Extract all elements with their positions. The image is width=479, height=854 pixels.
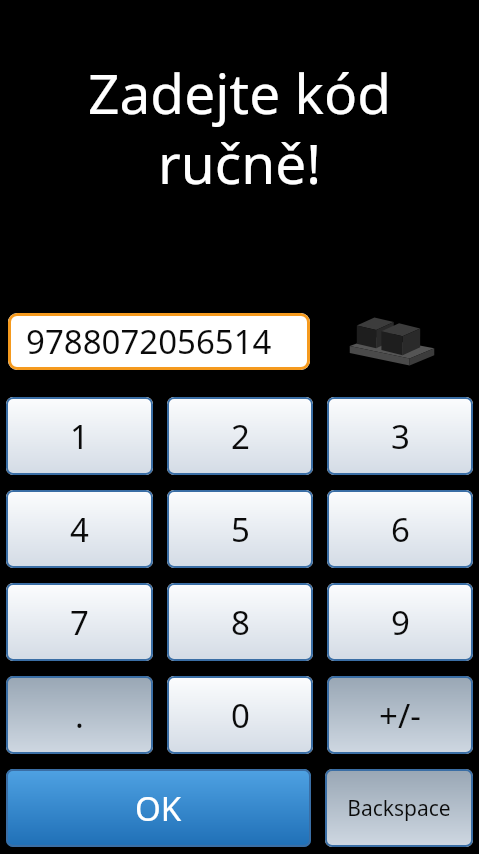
other: Pallet [348, 313, 436, 370]
staticText: 8 [231, 600, 250, 645]
staticText: 7 [70, 600, 89, 645]
staticText: 9 [391, 600, 410, 645]
button[interactable]: 2 [167, 397, 313, 475]
staticText: . [75, 693, 84, 738]
button[interactable]: 9 [327, 583, 473, 661]
staticText: Zadejte kód ručně! [88, 55, 391, 200]
button[interactable]: 6 [327, 490, 473, 568]
button[interactable]: +/- [327, 676, 473, 754]
button[interactable]: 0 [167, 676, 313, 754]
staticText: 5 [231, 507, 250, 552]
staticText: 4 [70, 507, 89, 552]
button[interactable]: 9788072056514 [8, 313, 310, 370]
staticText: 1 [70, 414, 89, 459]
button[interactable]: 1 [6, 397, 153, 475]
staticText: 2 [231, 414, 250, 459]
staticText: 6 [391, 507, 410, 552]
button[interactable]: Backspace [325, 769, 473, 847]
staticText: Backspace [347, 794, 451, 823]
staticText: 0 [231, 693, 250, 738]
staticText: 9788072056514 [26, 319, 272, 364]
staticText: 3 [391, 414, 410, 459]
button[interactable]: . [6, 676, 153, 754]
button[interactable]: 7 [6, 583, 153, 661]
button[interactable]: OK [6, 769, 311, 847]
button[interactable]: 3 [327, 397, 473, 475]
button[interactable]: 4 [6, 490, 153, 568]
button[interactable]: 5 [167, 490, 313, 568]
button[interactable]: 8 [167, 583, 313, 661]
staticText: +/- [379, 693, 421, 738]
staticText: OK [135, 786, 182, 831]
